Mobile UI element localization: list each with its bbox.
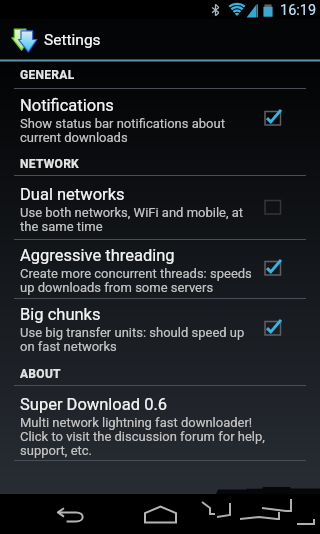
staticText: ABOUT: [20, 367, 61, 381]
staticText: GENERAL: [20, 68, 75, 82]
staticText: Show status bar notifications about curr…: [20, 116, 225, 145]
button[interactable]: Aggressive threading: [0, 239, 320, 299]
staticText: Notifications: [20, 96, 114, 115]
staticText: Multi network lightning fast downloader!…: [20, 415, 265, 458]
staticText: 16:19: [280, 2, 317, 19]
button[interactable]: Notifications: [0, 88, 320, 152]
button[interactable]: Back: [18, 494, 125, 534]
button[interactable]: Big chunks: [0, 298, 320, 360]
button[interactable]: Home: [125, 494, 195, 534]
staticText: Aggressive threading: [20, 246, 175, 265]
staticText: Use both networks, WiFi and mobile, at t…: [20, 205, 244, 234]
staticText: Dual networks: [20, 185, 125, 204]
staticText: Create more concurrent threads: speeds u…: [20, 266, 252, 295]
staticText: Super Download 0.6: [20, 395, 168, 414]
staticText: Use big transfer units: should speed up …: [20, 325, 245, 354]
button[interactable]: Recent apps: [195, 494, 320, 534]
button[interactable]: Super Download 0.6: [0, 385, 320, 460]
staticText: Big chunks: [20, 305, 101, 324]
staticText: NETWORK: [20, 157, 80, 171]
staticText: Settings: [44, 31, 101, 49]
button[interactable]: Dual networks: [0, 175, 320, 239]
